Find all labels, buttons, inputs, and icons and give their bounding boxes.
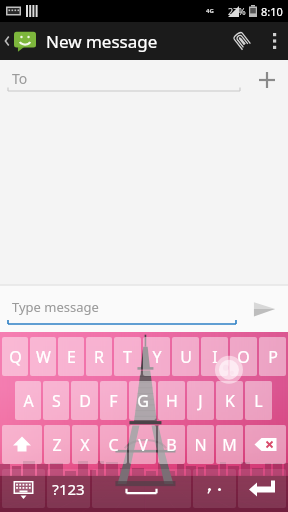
staticText: J bbox=[198, 390, 203, 412]
staticText: H bbox=[166, 390, 178, 412]
staticText: M bbox=[222, 434, 237, 456]
button[interactable]: Q bbox=[2, 337, 28, 376]
button[interactable]: Y bbox=[143, 337, 170, 376]
button[interactable]: H bbox=[158, 381, 185, 420]
staticText: T bbox=[123, 346, 132, 368]
button[interactable]: Shift bbox=[2, 425, 42, 464]
button[interactable]: G bbox=[129, 381, 156, 420]
staticText: To bbox=[12, 69, 28, 88]
button[interactable]: More options bbox=[262, 22, 288, 60]
button[interactable]: Enter bbox=[238, 469, 286, 508]
button[interactable]: B bbox=[158, 425, 185, 464]
staticText: S bbox=[52, 390, 61, 412]
staticText: 4G bbox=[206, 7, 214, 15]
button[interactable]: Backspace bbox=[245, 425, 286, 464]
button[interactable]: Z bbox=[44, 425, 70, 464]
staticText: K bbox=[225, 390, 235, 412]
staticText: R bbox=[94, 346, 104, 368]
staticText: A bbox=[23, 390, 34, 412]
button[interactable]: O bbox=[230, 337, 257, 376]
button[interactable]: M bbox=[216, 425, 243, 464]
staticText: V bbox=[138, 434, 148, 456]
button[interactable]: X bbox=[72, 425, 98, 464]
staticText: 27% bbox=[228, 5, 246, 17]
staticText: B bbox=[166, 434, 177, 456]
button[interactable]: Add recipient bbox=[246, 60, 288, 100]
button[interactable]: E bbox=[58, 337, 84, 376]
button[interactable]: U bbox=[172, 337, 199, 376]
button[interactable]: Comma and period bbox=[193, 469, 236, 508]
button[interactable]: Send bbox=[240, 285, 288, 332]
staticText: F bbox=[109, 390, 118, 412]
button[interactable]: Space bbox=[92, 469, 191, 508]
button[interactable]: P bbox=[259, 337, 286, 376]
button[interactable]: I bbox=[201, 337, 228, 376]
button[interactable]: Back bbox=[0, 30, 40, 52]
staticText: P bbox=[268, 346, 278, 368]
button[interactable]: S bbox=[43, 381, 69, 420]
staticText: Q bbox=[9, 346, 22, 368]
button[interactable]: ?123 bbox=[47, 469, 90, 508]
button[interactable]: Attach bbox=[222, 22, 262, 60]
button[interactable]: K bbox=[216, 381, 243, 420]
staticText: New message bbox=[46, 30, 158, 53]
button[interactable]: V bbox=[129, 425, 156, 464]
button[interactable]: R bbox=[86, 337, 112, 376]
button[interactable]: F bbox=[100, 381, 127, 420]
staticText: Z bbox=[52, 434, 62, 456]
button[interactable]: J bbox=[187, 381, 214, 420]
staticText: G bbox=[137, 390, 149, 412]
button[interactable]: C bbox=[100, 425, 127, 464]
staticText: Type message bbox=[12, 298, 99, 316]
staticText: O bbox=[237, 346, 250, 368]
button[interactable]: A bbox=[15, 381, 41, 420]
button[interactable]: T bbox=[114, 337, 141, 376]
staticText: N bbox=[194, 434, 207, 456]
button[interactable]: To bbox=[0, 60, 246, 100]
staticText: Y bbox=[152, 346, 162, 368]
staticText: X bbox=[80, 434, 90, 456]
staticText: U bbox=[180, 346, 192, 368]
button[interactable]: Change keyboard bbox=[2, 469, 45, 508]
staticText: I bbox=[212, 346, 218, 368]
button[interactable]: Type message bbox=[0, 285, 240, 332]
staticText: L bbox=[254, 390, 263, 412]
staticText: W bbox=[36, 346, 51, 368]
staticText: E bbox=[67, 346, 76, 368]
button[interactable]: N bbox=[187, 425, 214, 464]
other: Back bbox=[3, 33, 11, 49]
button[interactable]: D bbox=[71, 381, 98, 420]
button[interactable]: L bbox=[245, 381, 272, 420]
staticText: 8:10 bbox=[261, 4, 283, 19]
staticText: D bbox=[79, 390, 91, 412]
button[interactable]: W bbox=[30, 337, 56, 376]
staticText: ?123 bbox=[52, 479, 85, 499]
staticText: C bbox=[108, 434, 119, 456]
